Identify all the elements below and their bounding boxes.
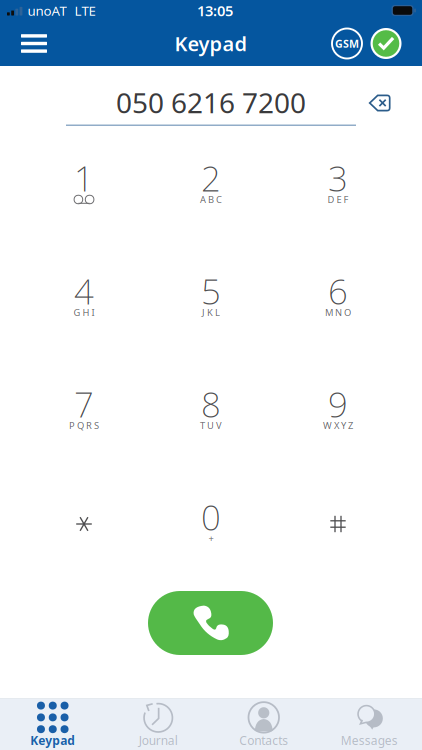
staticText: 5 — [201, 268, 221, 314]
staticText: W X Y Z — [323, 419, 353, 432]
staticText: D E F — [327, 193, 348, 206]
button[interactable]: 1 — [20, 128, 147, 241]
button[interactable] — [274, 467, 401, 580]
button[interactable]: GSM network — [327, 21, 366, 66]
staticText: 6 — [328, 268, 348, 314]
button[interactable] — [20, 467, 147, 580]
staticText: + — [208, 532, 213, 545]
button[interactable]: 0 — [147, 467, 274, 580]
staticText: Journal — [139, 732, 178, 748]
staticText: T U V — [200, 419, 222, 432]
staticText: 9 — [328, 381, 348, 427]
staticText: Keypad — [174, 30, 247, 57]
staticText: G H I — [73, 306, 94, 319]
button[interactable]: Messages — [316, 699, 422, 750]
button[interactable]: 5 — [147, 241, 274, 354]
staticText: 7 — [74, 381, 94, 427]
staticText: unoAT — [27, 2, 66, 19]
staticText: Messages — [341, 732, 398, 748]
staticText: GSM — [335, 36, 359, 51]
button[interactable]: Keypad — [0, 699, 105, 750]
staticText: 4 — [74, 268, 94, 314]
staticText: M N O — [325, 306, 351, 319]
button[interactable]: 2 — [147, 128, 274, 241]
button[interactable]: 8 — [147, 354, 274, 467]
button[interactable]: Menu — [7, 21, 61, 66]
staticText: 0 — [201, 494, 221, 540]
button[interactable]: 3 — [274, 128, 401, 241]
staticText: LTE — [74, 2, 95, 19]
staticText: 8 — [201, 381, 221, 427]
button[interactable]: Connection status — [366, 21, 405, 66]
button[interactable]: Contacts — [211, 699, 316, 750]
button[interactable]: 7 — [20, 354, 147, 467]
staticText: Contacts — [239, 732, 288, 748]
staticText: 1 — [74, 155, 94, 201]
button[interactable]: Journal — [105, 699, 211, 750]
staticText: 050 6216 7200 — [116, 84, 306, 121]
staticText: P Q R S — [69, 419, 99, 432]
staticText: Keypad — [30, 732, 75, 748]
staticText: 3 — [328, 155, 348, 201]
button[interactable]: 9 — [274, 354, 401, 467]
button[interactable]: Call — [148, 591, 273, 655]
button[interactable]: 6 — [274, 241, 401, 354]
button[interactable]: 4 — [20, 241, 147, 354]
staticText: J K L — [202, 306, 220, 319]
staticText: 2 — [201, 155, 221, 201]
staticText: 13:05 — [197, 1, 233, 20]
staticText: A B C — [200, 193, 222, 206]
button[interactable]: Delete — [358, 81, 402, 125]
